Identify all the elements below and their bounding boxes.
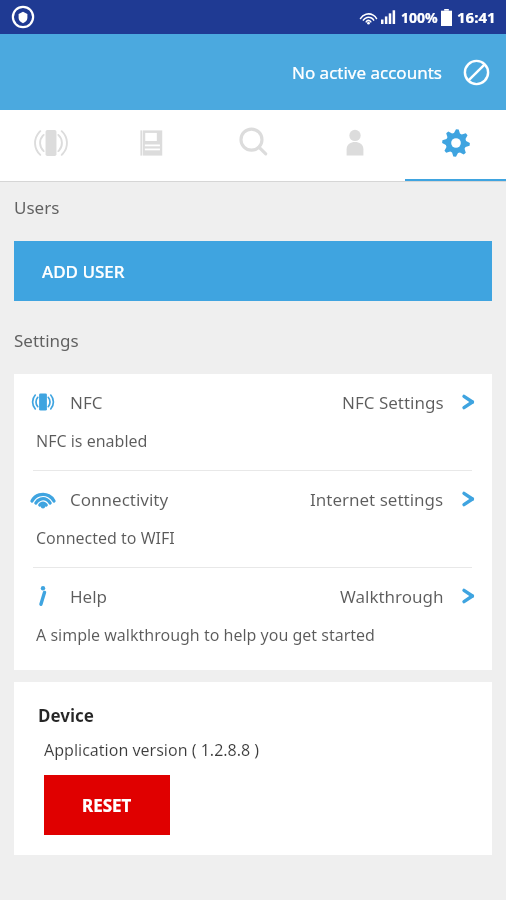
staticText: 100% [401, 8, 438, 27]
button[interactable]: RESET [44, 775, 170, 835]
staticText: Users [14, 196, 60, 219]
button[interactable]: Contactless [0, 110, 102, 182]
button[interactable]: Settings [405, 110, 506, 182]
staticText: 16:41 [457, 7, 496, 27]
staticText: Device [38, 704, 94, 727]
button[interactable]: Profile [304, 110, 405, 182]
staticText: Help [70, 585, 108, 608]
staticText: Application version ( 1.2.8.8 ) [44, 739, 260, 761]
staticText: Connected to WIFI [36, 527, 175, 549]
staticText: Internet settings [310, 488, 444, 511]
button[interactable]: ADD USER [14, 241, 492, 301]
staticText: A simple walkthrough to help you get sta… [36, 624, 375, 646]
button[interactable]: Connectivity [14, 471, 492, 567]
staticText: Settings [14, 329, 79, 352]
staticText: No active accounts [292, 61, 442, 84]
staticText: NFC [70, 391, 103, 414]
button[interactable]: Help [14, 568, 492, 664]
button[interactable]: NFC [14, 374, 492, 470]
staticText: NFC is enabled [36, 430, 148, 452]
staticText: Walkthrough [340, 585, 444, 608]
staticText: NFC Settings [342, 391, 444, 414]
staticText: RESET [82, 794, 132, 817]
button[interactable]: Search [203, 110, 304, 182]
staticText: ADD USER [42, 260, 125, 283]
button[interactable]: Cards [102, 110, 203, 182]
button[interactable]: No active accounts [458, 54, 494, 90]
staticText: Connectivity [70, 488, 169, 511]
